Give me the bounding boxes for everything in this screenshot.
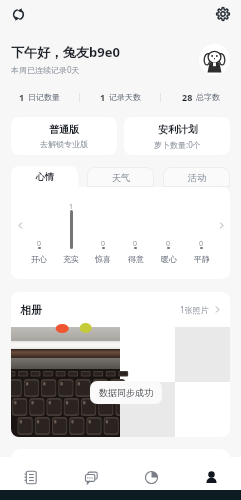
- staticText: 0: [101, 239, 106, 249]
- staticText: 总字数: [196, 92, 220, 102]
- staticText: 萝卜数量:0个: [154, 139, 201, 150]
- staticText: 安利计划: [158, 123, 198, 136]
- button[interactable]: Statistics: [121, 457, 181, 498]
- button[interactable]: Messages: [61, 457, 121, 498]
- staticText: 0: [199, 239, 204, 249]
- staticText: 0: [133, 239, 138, 249]
- staticText: 日记数量: [28, 92, 60, 102]
- staticText: 天气: [112, 172, 130, 183]
- button[interactable]: 28: [161, 89, 241, 105]
- staticText: 本周已连续记录0天: [11, 64, 80, 75]
- button[interactable]: 天气: [87, 167, 154, 187]
- button[interactable]: 活动: [163, 167, 230, 187]
- staticText: 平静: [194, 254, 210, 264]
- staticText: 数据同步成功: [99, 387, 153, 398]
- staticText: 开心: [31, 254, 47, 264]
- staticText: 1: [100, 91, 106, 103]
- staticText: 惊喜: [95, 254, 111, 264]
- button[interactable]: 1张照片: [180, 304, 221, 315]
- staticText: 普通版: [49, 123, 79, 136]
- staticText: 0: [166, 239, 171, 249]
- button[interactable]: Settings: [212, 3, 234, 25]
- staticText: 得意: [128, 254, 144, 264]
- button[interactable]: Next: [214, 218, 228, 232]
- staticText: 充实: [63, 254, 79, 264]
- staticText: 记录天数: [109, 92, 141, 102]
- staticText: 去解锁专业版: [40, 139, 88, 149]
- button[interactable]: Sync: [7, 3, 29, 25]
- button[interactable]: 心情: [11, 166, 78, 187]
- button[interactable]: 1: [0, 89, 79, 105]
- button[interactable]: Profile avatar: [199, 44, 230, 75]
- button[interactable]: Previous: [13, 218, 27, 232]
- staticText: 下午好，兔友b9e0: [11, 43, 120, 61]
- button[interactable]: 普通版: [11, 117, 117, 155]
- staticText: 0: [37, 239, 42, 249]
- staticText: 1张照片: [180, 304, 209, 315]
- staticText: 活动: [188, 172, 206, 183]
- button[interactable]: 安利计划: [124, 117, 230, 155]
- button[interactable]: 1: [80, 89, 160, 105]
- staticText: 心情: [36, 171, 54, 182]
- staticText: 28: [182, 91, 193, 103]
- staticText: 相册: [20, 303, 42, 317]
- staticText: 1: [69, 202, 74, 212]
- button[interactable]: Photo: [11, 327, 120, 437]
- staticText: 暖心: [161, 254, 177, 264]
- button[interactable]: Profile: [181, 457, 241, 498]
- staticText: 1: [19, 91, 25, 103]
- button[interactable]: Diary: [0, 457, 61, 498]
